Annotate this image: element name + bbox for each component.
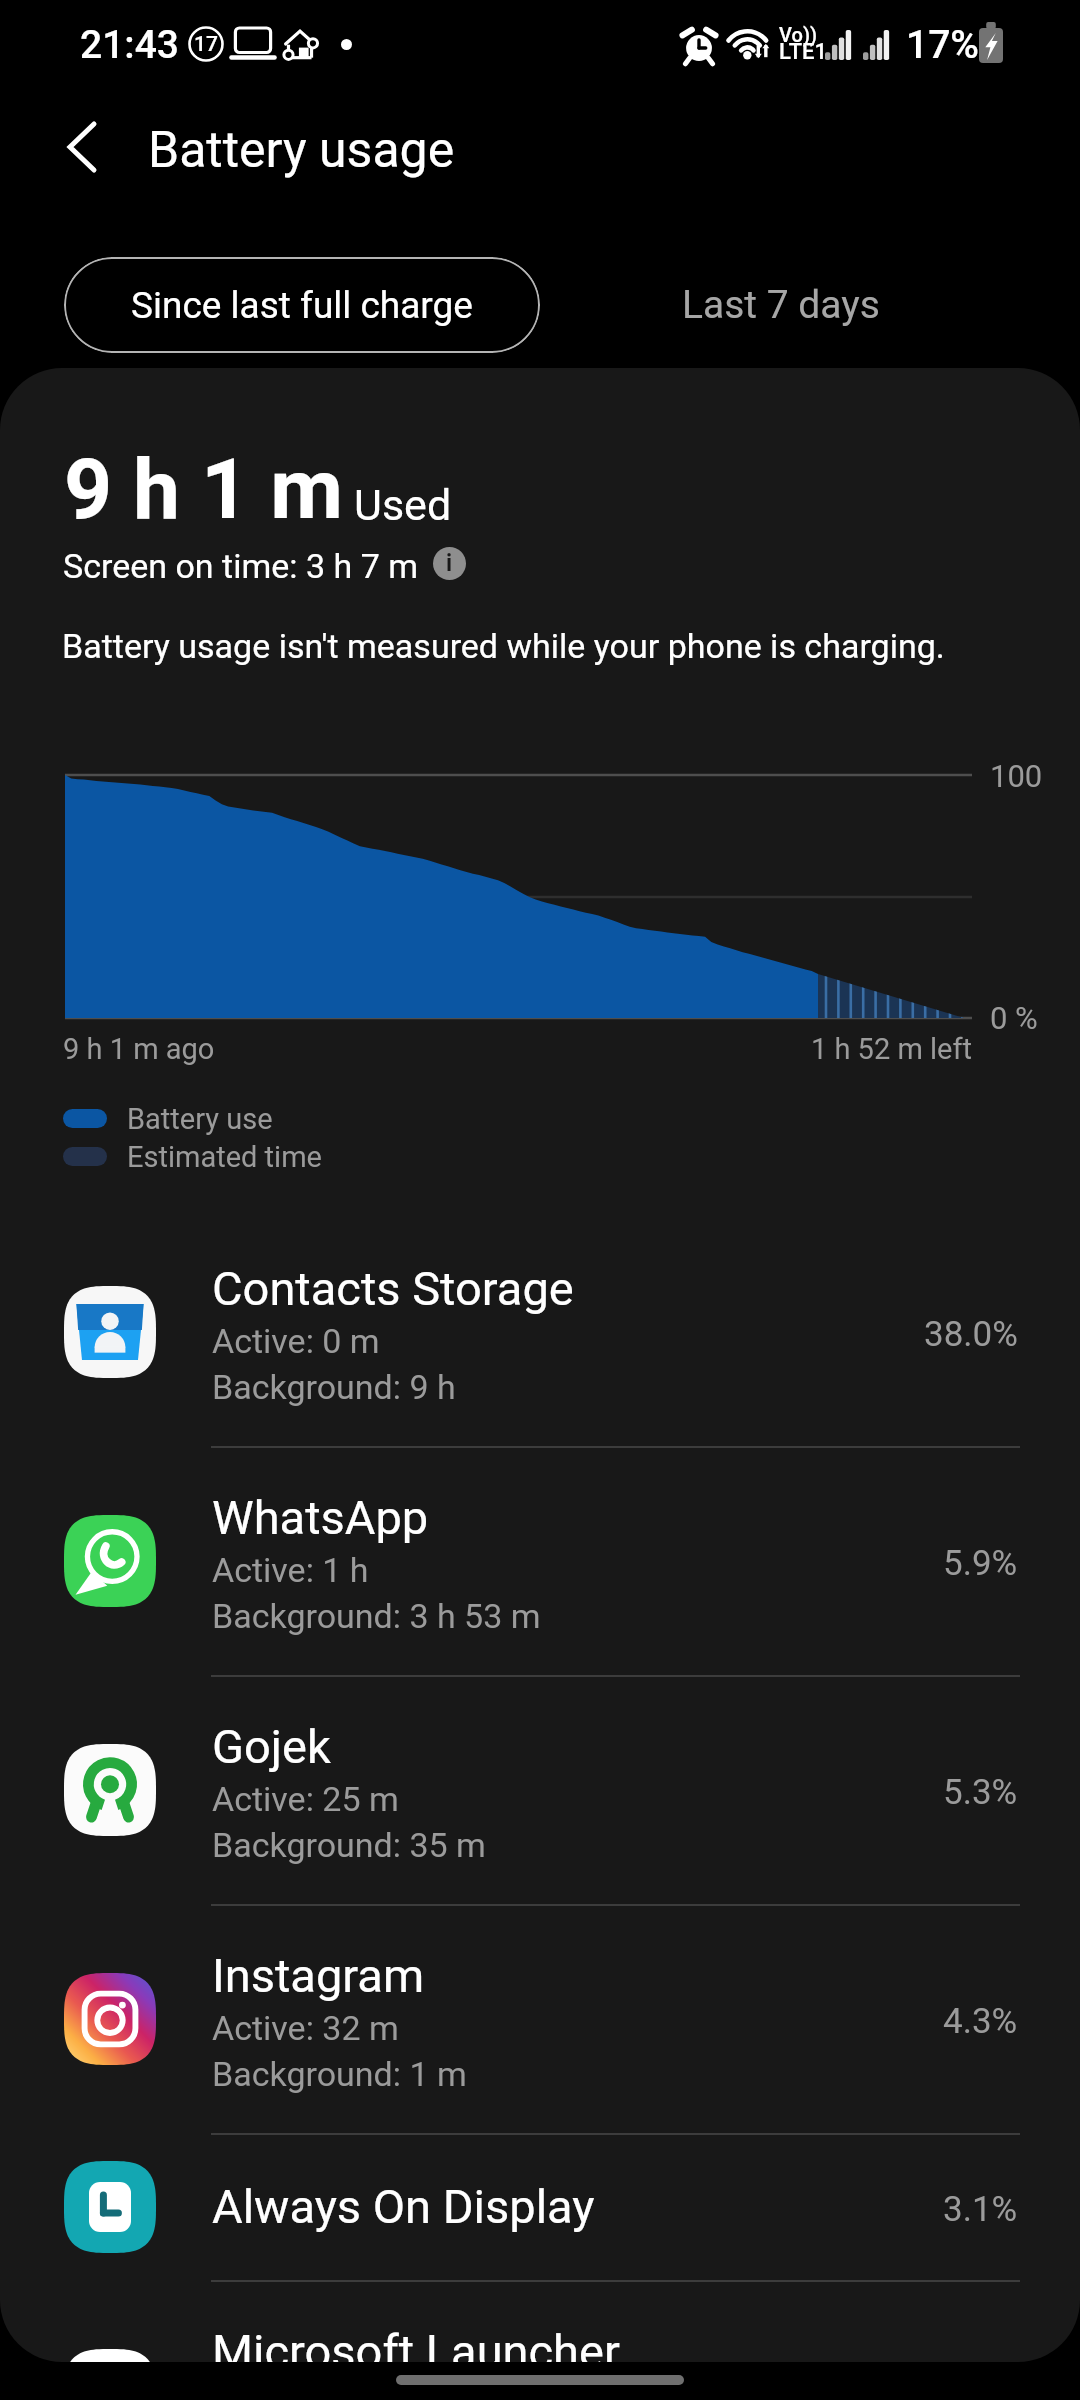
- staticText: Battery usage: [148, 121, 455, 180]
- staticText: 5.9%: [943, 1543, 1018, 1584]
- staticText: Since last full charge: [131, 284, 473, 327]
- button[interactable]: Since last full charge: [64, 257, 540, 353]
- staticText: Instagram: [212, 1948, 425, 2003]
- button[interactable]: Instagram: [0, 1904, 1080, 2133]
- staticText: Gojek: [212, 1719, 331, 1774]
- staticText: 17: [194, 32, 218, 57]
- staticText: Contacts Storage: [212, 1261, 574, 1316]
- staticText: Used: [354, 480, 452, 530]
- staticText: 9 h 1 m ago: [63, 1032, 215, 1066]
- staticText: 100: [990, 758, 1043, 794]
- staticText: Background: 1 m: [212, 2054, 467, 2094]
- staticText: Active: 1 h: [212, 1550, 369, 1590]
- button[interactable]: Microsoft Launcher: [0, 2280, 1080, 2362]
- button[interactable]: WhatsApp: [0, 1446, 1080, 1675]
- staticText: Microsoft Launcher: [212, 2324, 620, 2362]
- staticText: Last 7 days: [682, 282, 880, 328]
- staticText: 9 h 1 m: [64, 440, 343, 538]
- staticText: Background: 9 h: [212, 1367, 456, 1407]
- staticText: Active: 25 m: [212, 1779, 399, 1819]
- staticText: 1 h 52 m left: [640, 1032, 972, 1066]
- staticText: Always On Display: [212, 2179, 595, 2234]
- button[interactable]: Gojek: [0, 1675, 1080, 1904]
- staticText: Active: 32 m: [212, 2008, 399, 2048]
- button[interactable]: Last 7 days: [600, 257, 962, 353]
- staticText: 0 %: [990, 1000, 1038, 1036]
- staticText: 17%: [906, 22, 979, 68]
- staticText: Estimated time: [127, 1140, 322, 1174]
- staticText: 38.0%: [924, 1314, 1018, 1355]
- staticText: 21:43: [80, 22, 180, 68]
- button[interactable]: Info: [433, 547, 466, 580]
- staticText: Background: 3 h 53 m: [212, 1596, 541, 1636]
- staticText: Screen on time: 3 h 7 m: [63, 546, 419, 586]
- staticText: 3.1%: [943, 2189, 1018, 2230]
- staticText: Vo)): [779, 23, 818, 46]
- staticText: LTE1: [779, 39, 828, 65]
- button[interactable]: Contacts Storage: [0, 1217, 1080, 1446]
- staticText: WhatsApp: [212, 1490, 429, 1545]
- staticText: 5.3%: [943, 1772, 1018, 1813]
- staticText: Battery use: [127, 1102, 273, 1136]
- staticText: Active: 0 m: [212, 1321, 380, 1361]
- staticText: Battery usage isn't measured while your …: [62, 626, 945, 666]
- staticText: i: [446, 550, 453, 577]
- button[interactable]: Always On Display: [0, 2133, 1080, 2280]
- button[interactable]: Back: [36, 101, 128, 193]
- staticText: Background: 35 m: [212, 1825, 486, 1865]
- staticText: 4.3%: [943, 2001, 1018, 2042]
